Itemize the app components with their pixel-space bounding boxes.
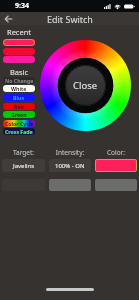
button[interactable]: Colour [95,159,137,172]
staticText: Target: [2,148,45,157]
staticText: 100% - ON [55,162,85,170]
staticText: Color Cycle [5,120,34,127]
button[interactable]: Recent colour [3,48,35,55]
button[interactable]: No Change [3,77,35,84]
staticText: Edit Switch [47,13,93,25]
staticText: Basic [3,67,35,77]
button[interactable]: Option 3 [95,179,137,191]
staticText: Close [73,79,98,92]
button[interactable]: Blue [3,94,35,101]
button[interactable]: White [3,85,35,92]
staticText: Recent [3,27,35,37]
staticText: Color: [95,148,137,157]
button[interactable]: Back [0,12,17,25]
staticText: Green [11,111,27,118]
staticText: Javelins [13,162,35,170]
button[interactable]: Option 2 [49,179,91,191]
button[interactable]: Intensity [49,159,91,172]
staticText: Cross Fade [5,128,33,135]
button[interactable]: Target [2,159,45,172]
staticText: 9:34 [15,1,29,11]
button[interactable]: Close [65,65,106,106]
staticText: Red [14,103,24,110]
button[interactable]: Recent colour [3,39,35,46]
staticText: Intensity: [49,148,91,157]
button[interactable]: Color Cycle [3,120,35,127]
staticText: Blue [13,94,25,101]
staticText: White [11,85,27,92]
button[interactable]: Red [3,103,35,110]
button[interactable]: Green [3,111,35,118]
button[interactable]: Cross Fade [3,128,35,135]
staticText: No Change [5,77,34,84]
button[interactable]: Recent colour [3,56,35,63]
